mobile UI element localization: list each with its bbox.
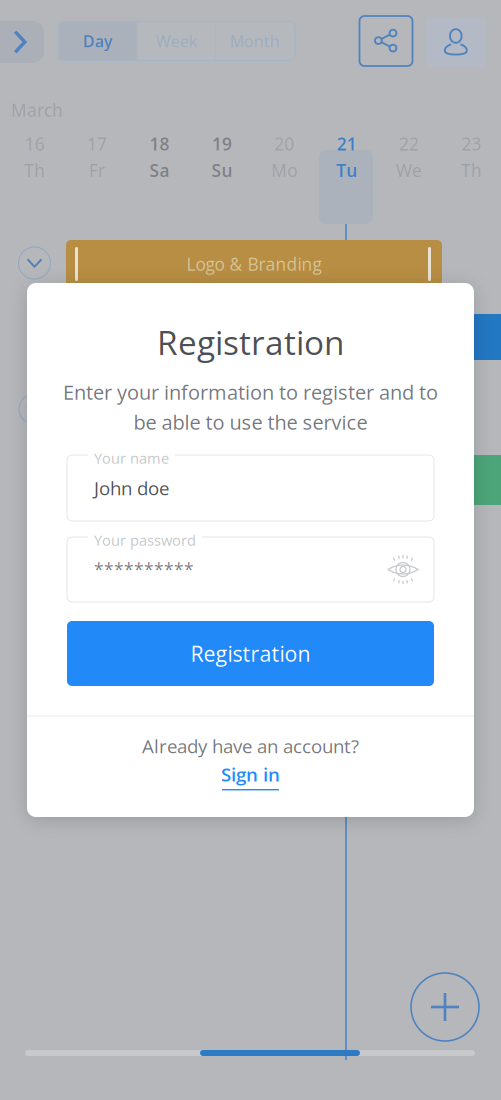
button[interactable]: Day bbox=[59, 21, 137, 60]
button[interactable]: 22 bbox=[378, 129, 440, 185]
staticText: Registration bbox=[190, 639, 310, 668]
button[interactable]: 16 bbox=[3, 129, 66, 185]
staticText: 20 bbox=[274, 132, 294, 155]
button[interactable]: Next bbox=[0, 21, 44, 63]
staticText: Registration bbox=[157, 319, 344, 365]
staticText: Already have an account? bbox=[142, 733, 359, 759]
button[interactable]: 17 bbox=[66, 129, 128, 185]
button[interactable]: 18 bbox=[128, 129, 191, 185]
staticText: Fr bbox=[89, 158, 105, 182]
staticText: Week bbox=[156, 30, 197, 52]
staticText: 17 bbox=[87, 132, 107, 155]
button[interactable]: Account bbox=[426, 17, 486, 67]
button[interactable]: 23 bbox=[440, 129, 501, 185]
button[interactable]: Show password bbox=[387, 553, 419, 585]
staticText: Th bbox=[461, 158, 482, 182]
staticText: 19 bbox=[212, 132, 232, 155]
button[interactable]: Add event bbox=[411, 973, 479, 1041]
staticText: Th bbox=[24, 158, 45, 182]
button[interactable]: Collapse bbox=[19, 394, 49, 424]
staticText: Logo & Branding bbox=[186, 252, 321, 276]
button[interactable]: 21 bbox=[315, 129, 378, 185]
button[interactable]: Share bbox=[359, 16, 412, 66]
staticText: Sa bbox=[149, 158, 169, 182]
button[interactable]: Month bbox=[216, 21, 294, 60]
button[interactable]: Registration bbox=[67, 621, 434, 686]
staticText: Your name bbox=[94, 448, 169, 468]
staticText: Month bbox=[230, 30, 280, 52]
staticText: 21 bbox=[337, 132, 357, 155]
staticText: March bbox=[11, 98, 63, 122]
staticText: 16 bbox=[25, 132, 45, 155]
staticText: Enter your information to register and t… bbox=[63, 378, 438, 406]
button[interactable]: 20 bbox=[253, 129, 315, 185]
button[interactable]: Sign in bbox=[210, 763, 290, 789]
staticText: be able to use the service bbox=[133, 408, 367, 436]
staticText: 18 bbox=[149, 132, 169, 155]
button[interactable]: 19 bbox=[191, 129, 253, 185]
button[interactable]: Week bbox=[138, 21, 215, 60]
staticText: Su bbox=[211, 158, 232, 182]
staticText: 22 bbox=[399, 132, 419, 155]
button[interactable]: Collapse bbox=[18, 247, 50, 279]
staticText: ********** bbox=[94, 558, 194, 581]
staticText: Mo bbox=[271, 158, 297, 182]
staticText: Your password bbox=[94, 530, 196, 550]
staticText: Day bbox=[83, 30, 113, 52]
staticText: 23 bbox=[461, 132, 481, 155]
staticText: Sign in bbox=[221, 762, 280, 787]
staticText: John doe bbox=[94, 475, 169, 501]
staticText: Tu bbox=[336, 158, 357, 182]
staticText: We bbox=[396, 158, 422, 182]
